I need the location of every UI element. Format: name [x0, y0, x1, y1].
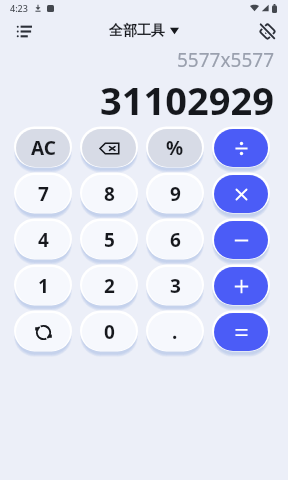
button[interactable]: 4	[16, 221, 70, 259]
button[interactable]: Multiply	[214, 175, 268, 213]
button[interactable]: 1	[16, 267, 70, 305]
button[interactable]: Rotation lock	[254, 18, 280, 44]
button[interactable]: 全部工具	[109, 22, 179, 40]
staticText: 全部工具	[109, 22, 165, 40]
button[interactable]: 7	[16, 175, 70, 213]
staticText: AC	[31, 135, 56, 161]
staticText: 4	[38, 227, 49, 253]
button[interactable]: AC	[16, 129, 70, 167]
button[interactable]: Backspace	[82, 129, 136, 167]
button[interactable]: 6	[148, 221, 202, 259]
button[interactable]: Menu	[11, 18, 37, 44]
button[interactable]: 3	[148, 267, 202, 305]
staticText: 9	[170, 181, 181, 207]
staticText: 31102929	[100, 74, 274, 126]
staticText: 3	[170, 273, 181, 299]
staticText: 8	[104, 181, 115, 207]
button[interactable]: 5	[82, 221, 136, 259]
staticText: 5	[104, 227, 115, 253]
staticText: %	[166, 135, 184, 161]
button[interactable]: Minus	[214, 221, 268, 259]
button[interactable]: 8	[82, 175, 136, 213]
staticText: .	[172, 319, 178, 345]
staticText: 7	[38, 181, 49, 207]
button[interactable]: Unit convert	[16, 313, 70, 351]
staticText: 5577x5577	[177, 47, 274, 73]
button[interactable]: 0	[82, 313, 136, 351]
staticText: 2	[104, 273, 115, 299]
button[interactable]: %	[148, 129, 202, 167]
button[interactable]: Divide	[214, 129, 268, 167]
button[interactable]: Equals	[214, 313, 268, 351]
staticText: 4:23	[10, 2, 28, 14]
button[interactable]: .	[148, 313, 202, 351]
staticText: 0	[104, 319, 115, 345]
button[interactable]: Plus	[214, 267, 268, 305]
staticText: 1	[38, 273, 49, 299]
button[interactable]: 9	[148, 175, 202, 213]
button[interactable]: 2	[82, 267, 136, 305]
staticText: 6	[170, 227, 181, 253]
